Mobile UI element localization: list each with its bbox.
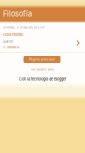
staticText: Página principal xyxy=(29,58,55,61)
staticText: Hola mundo xyxy=(3,32,23,37)
button[interactable]: Filosofía xyxy=(3,9,32,18)
staticText: Con la tecnología de Blogger xyxy=(19,77,66,81)
staticText: domingo, 9 de agosto de 2015 xyxy=(3,26,45,29)
button[interactable]: Entrada siguiente xyxy=(76,40,80,46)
button[interactable]: 10 comentarios xyxy=(3,46,19,49)
staticText: Filosofía xyxy=(3,9,32,18)
staticText: ¿Qué tal? xyxy=(3,40,13,43)
button[interactable]: Hola mundo xyxy=(3,32,23,37)
button[interactable]: Ver versión web xyxy=(0,68,85,71)
staticText: Ver versión web xyxy=(31,68,54,71)
staticText: 10 comentarios xyxy=(3,46,19,49)
button[interactable]: Página principal xyxy=(23,56,60,63)
